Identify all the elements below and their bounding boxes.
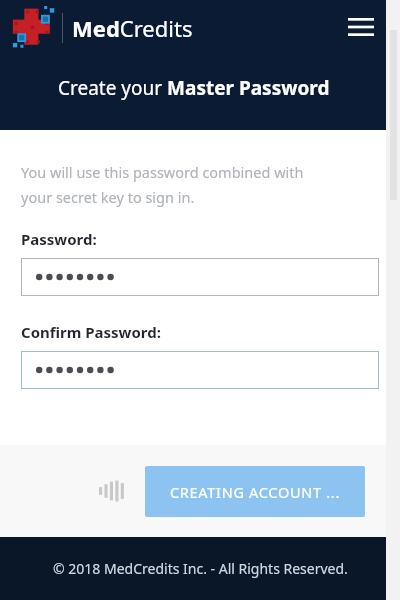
button[interactable] bbox=[21, 258, 379, 296]
button[interactable]: Menu bbox=[344, 10, 378, 44]
button[interactable]: CREATING ACCOUNT ... bbox=[145, 466, 365, 517]
button[interactable] bbox=[21, 351, 379, 389]
staticText: CREATING ACCOUNT ... bbox=[170, 482, 340, 502]
staticText: You will use this password combined with… bbox=[21, 162, 304, 207]
staticText: Confirm Password: bbox=[21, 322, 161, 342]
staticText: © 2018 MedCredits Inc. - All Rights Rese… bbox=[53, 559, 348, 578]
button[interactable]: MedCredits bbox=[12, 6, 193, 50]
staticText: Create your Master Password bbox=[58, 75, 330, 101]
staticText: MedCredits bbox=[72, 13, 193, 43]
staticText: Password: bbox=[21, 229, 97, 249]
